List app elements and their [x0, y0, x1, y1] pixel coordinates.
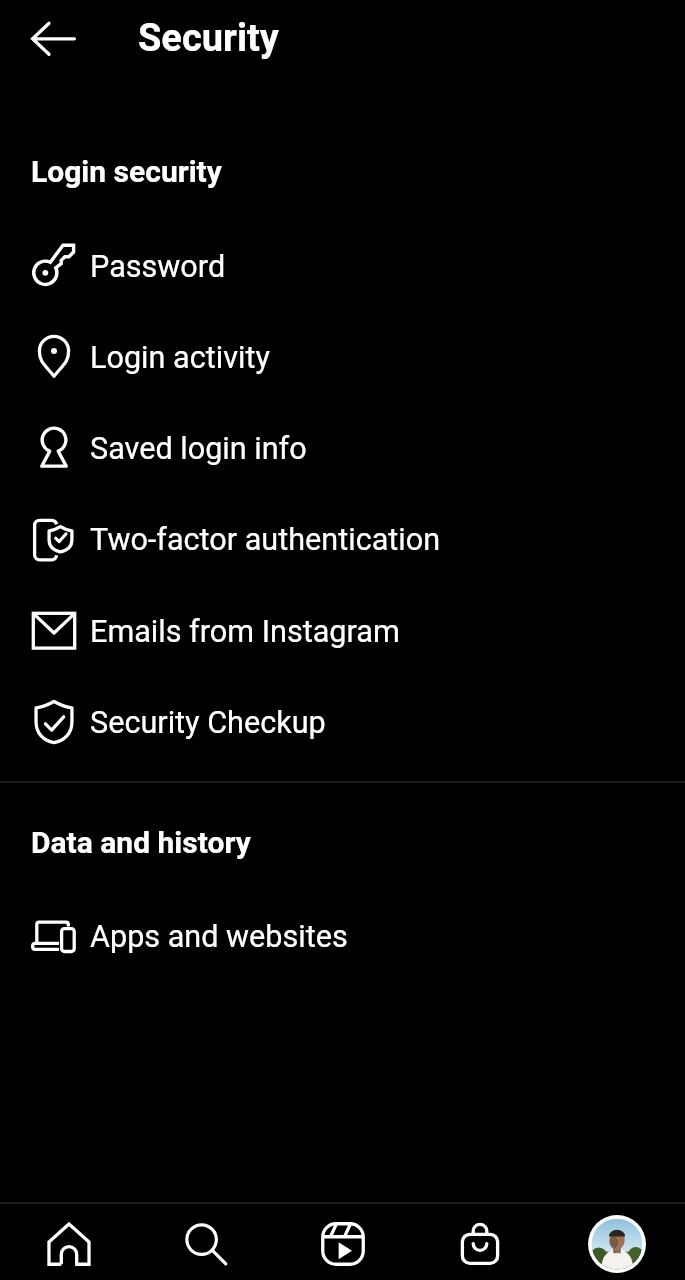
staticText: Apps and websites: [90, 919, 348, 955]
staticText: Security Checkup: [90, 705, 326, 741]
button[interactable]: Security Checkup: [0, 676, 685, 767]
button[interactable]: Saved login info: [0, 402, 685, 493]
button[interactable]: Emails from Instagram: [0, 585, 685, 676]
staticText: Security: [138, 16, 279, 61]
staticText: Saved login info: [90, 431, 307, 467]
staticText: Data and history: [31, 825, 251, 860]
button[interactable]: Home: [0, 1205, 137, 1280]
button[interactable]: Search: [137, 1205, 274, 1280]
button[interactable]: Shop: [411, 1205, 548, 1280]
button[interactable]: Back: [9, 6, 77, 74]
button[interactable]: Two-factor authentication: [0, 493, 685, 584]
button[interactable]: Login activity: [0, 311, 685, 402]
button[interactable]: Password: [0, 220, 685, 311]
staticText: Two-factor authentication: [90, 522, 441, 558]
staticText: Password: [90, 249, 226, 285]
button[interactable]: Reels: [274, 1205, 411, 1280]
button[interactable]: Apps and websites: [0, 890, 685, 981]
staticText: Emails from Instagram: [90, 614, 400, 650]
button[interactable]: Profile: [548, 1205, 685, 1280]
staticText: Login activity: [90, 340, 270, 376]
staticText: Login security: [31, 154, 222, 189]
